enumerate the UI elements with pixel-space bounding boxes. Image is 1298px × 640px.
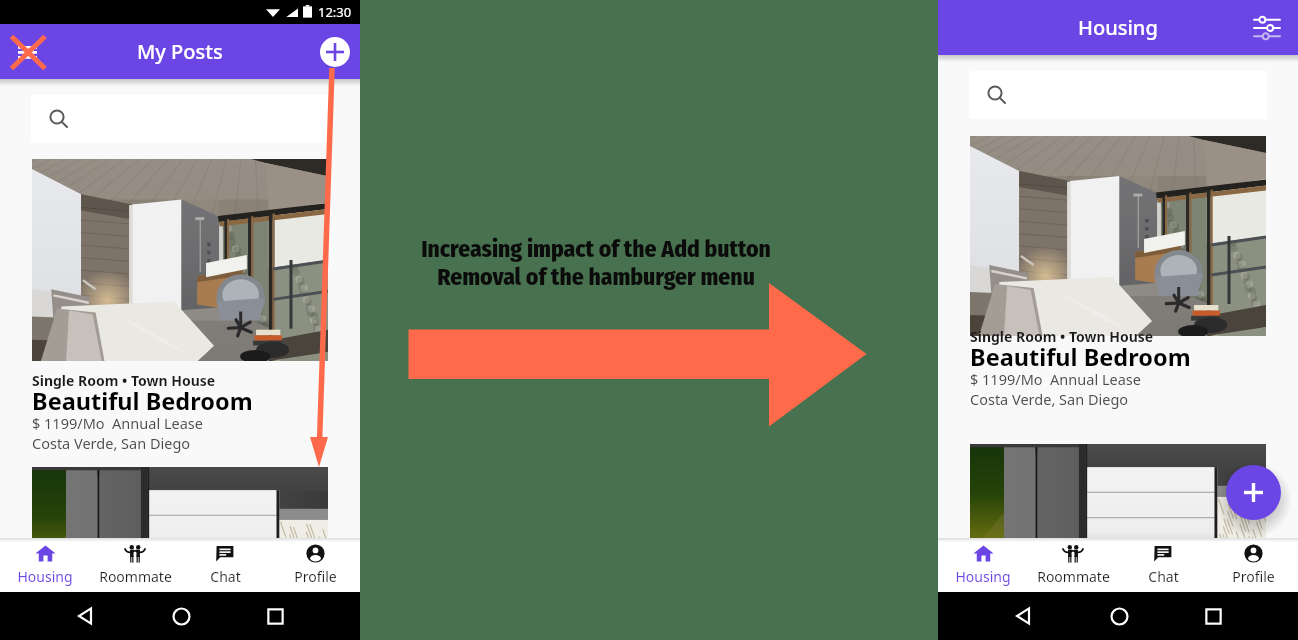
button[interactable]: Roommate	[90, 538, 180, 592]
button[interactable]: Search	[969, 71, 1267, 119]
staticText: $ 1199/Mo Annual Lease	[32, 413, 203, 433]
button[interactable]: Single Room • Town House	[970, 327, 1266, 418]
button[interactable]: Chat	[180, 538, 270, 592]
button[interactable]: Filter	[1250, 11, 1284, 45]
staticText: Beautiful Bedroom	[970, 341, 1191, 373]
button[interactable]: Menu	[10, 35, 44, 69]
staticText: Costa Verde, San Diego	[32, 433, 191, 453]
staticText: Roommate	[1037, 567, 1110, 586]
button[interactable]: Add	[1226, 465, 1281, 520]
staticText: Beautiful Bedroom	[32, 385, 253, 417]
button[interactable]: Roommate	[1028, 538, 1118, 592]
staticText: Profile	[294, 567, 337, 586]
button[interactable]: Housing	[938, 538, 1028, 592]
staticText: My Posts	[137, 38, 223, 65]
staticText: Single Room • Town House	[970, 327, 1154, 346]
staticText: 12:30	[318, 3, 352, 21]
button[interactable]: Single Room • Town House	[32, 371, 328, 462]
button[interactable]: Add	[320, 37, 350, 67]
staticText: Single Room • Town House	[32, 371, 216, 390]
button[interactable]: Profile	[1208, 538, 1298, 592]
staticText: Removal of the hamburger menu	[437, 263, 755, 291]
staticText: $ 1199/Mo Annual Lease	[970, 369, 1141, 389]
staticText: Increasing impact of the Add button	[421, 235, 771, 263]
button[interactable]: Profile	[270, 538, 360, 592]
staticText: Chat	[210, 567, 241, 586]
staticText: Housing	[1078, 14, 1158, 41]
staticText: Housing	[955, 567, 1011, 586]
button[interactable]: Search	[31, 95, 329, 143]
staticText: Profile	[1232, 567, 1275, 586]
staticText: Costa Verde, San Diego	[970, 389, 1129, 409]
staticText: Housing	[17, 567, 73, 586]
staticText: Roommate	[99, 567, 172, 586]
button[interactable]: Housing	[0, 538, 90, 592]
button[interactable]: Chat	[1118, 538, 1208, 592]
staticText: Chat	[1148, 567, 1179, 586]
